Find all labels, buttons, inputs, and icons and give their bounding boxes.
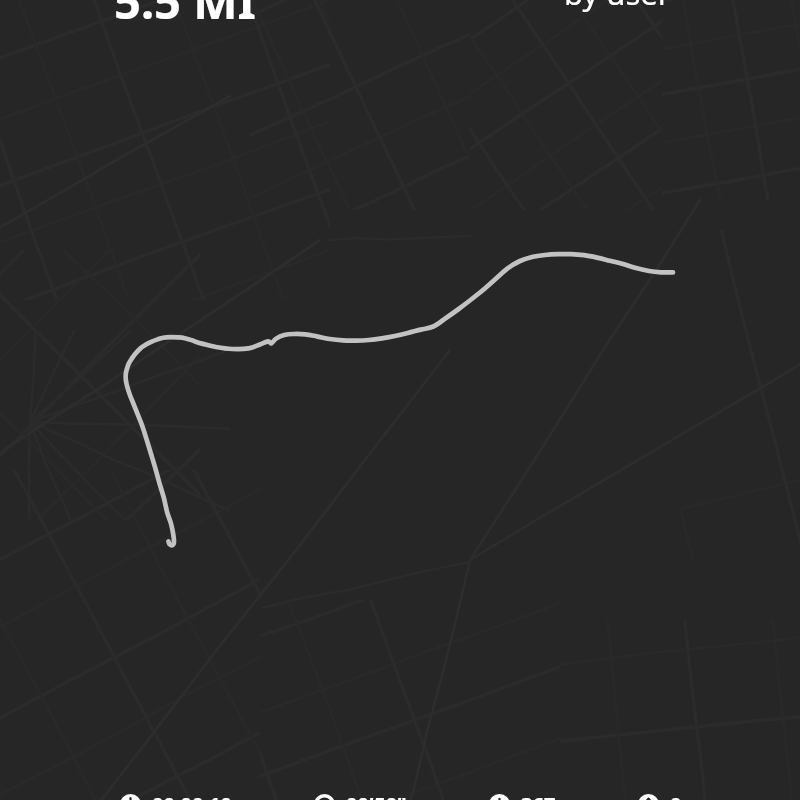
button[interactable]: 5.5 MI [0, 0, 800, 33]
button[interactable]: Calories [489, 791, 556, 800]
staticText: 00:00:10 [152, 791, 232, 800]
staticText: 00'50" [346, 791, 407, 800]
button[interactable]: Duration [120, 791, 232, 800]
staticText: 367 [521, 791, 556, 800]
staticText: by user [564, 0, 671, 14]
staticText: 5.5 MI [114, 0, 256, 33]
button[interactable]: Elevation [638, 791, 682, 800]
staticText: 0 [670, 791, 682, 800]
button[interactable]: Pace [314, 791, 407, 800]
